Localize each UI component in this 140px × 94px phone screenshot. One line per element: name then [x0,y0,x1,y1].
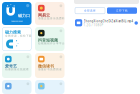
staticText: 热播剧集在线观看 [5,68,29,71]
button[interactable]: 网易云 [35,2,64,25]
staticText: 1.2G / 1080P [84,23,104,27]
staticText: ZhongXiongCheDiZaiXianBiLi.mp4 [84,19,134,23]
staticText: 爱奇艺 [5,64,17,68]
staticText: 下载视频音乐图片资源神器 [11,20,23,22]
staticText: 立即下载 [116,9,128,12]
staticText: 短视频创作分享平台 [38,42,65,45]
staticText: 微信读书 [38,64,54,68]
button[interactable] [35,80,64,94]
button[interactable]: 抖音短视频 [35,27,64,51]
button[interactable]: 全部选择 [75,7,105,14]
button[interactable]: 磁力搜索 [2,27,31,51]
staticText: 磁力口 [18,13,30,18]
staticText: 海量好书免费阅读 [38,68,62,71]
button[interactable]: ZhongXiongCheDiZaiXianBiLi.mp4 [74,18,140,28]
staticText: 网易云 [38,13,50,17]
staticText: 磁力搜索 [5,30,21,34]
staticText: 海量正版音乐免费听 [38,17,65,20]
button[interactable]: 爱奇艺 [2,53,31,78]
button[interactable] [2,80,31,94]
staticText: 全部选择 [84,9,96,12]
button[interactable]: 微信读书 [35,53,64,78]
button[interactable]: 磁力口 [2,2,31,25]
staticText: 抖音短视频 [38,38,58,42]
button[interactable]: 立即下载 [107,7,137,14]
staticText: 全网资源，轻松下载 [5,34,32,37]
